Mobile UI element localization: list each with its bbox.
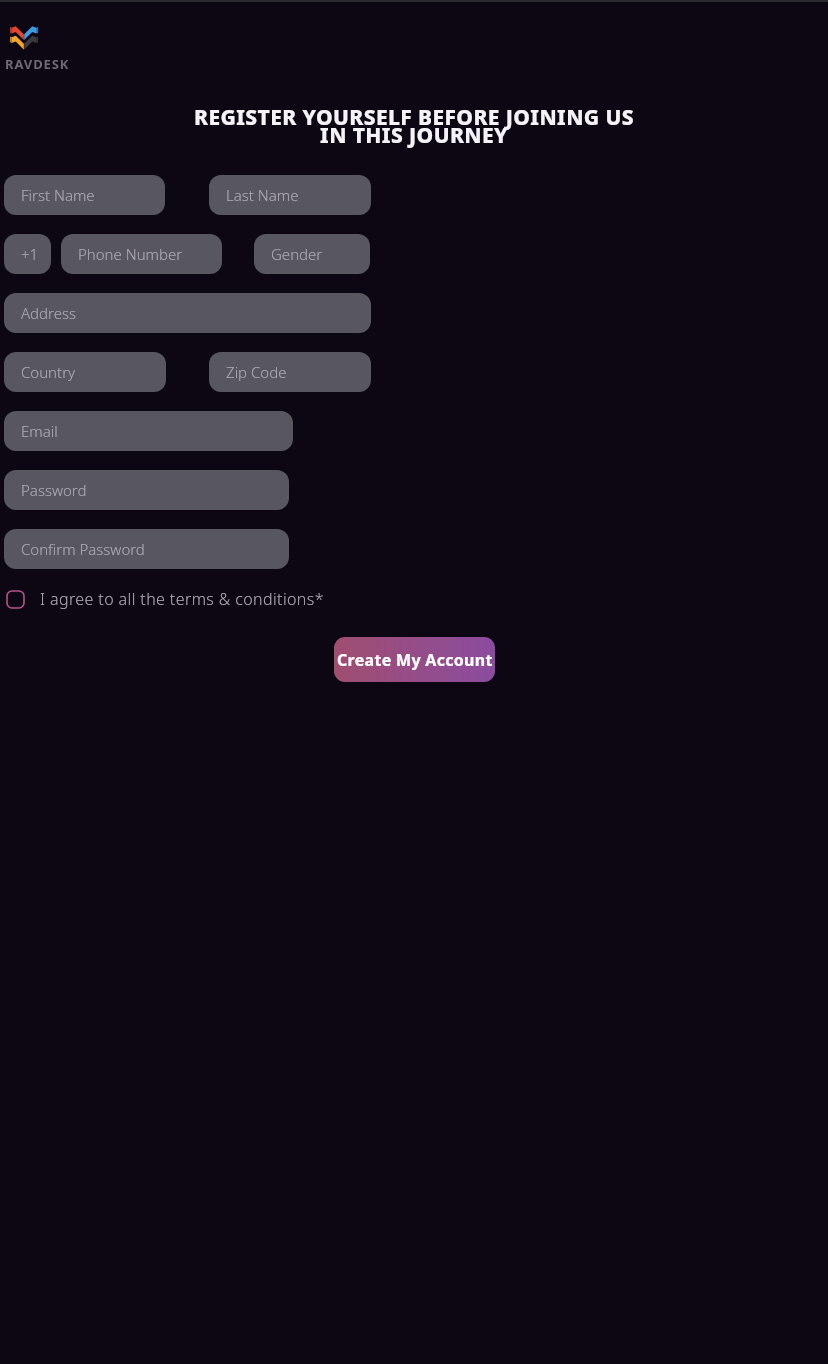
- button[interactable]: Address: [4, 293, 371, 333]
- button[interactable]: Country: [4, 352, 166, 392]
- staticText: Create My Account: [337, 649, 493, 671]
- staticText: RAVDESK: [5, 55, 70, 73]
- staticText: +1: [21, 244, 39, 264]
- staticText: Address: [21, 303, 77, 323]
- button[interactable]: Phone Number: [61, 234, 222, 274]
- button[interactable]: First Name: [4, 175, 165, 215]
- button[interactable]: +1: [4, 234, 51, 274]
- staticText: I agree to all the terms & conditions*: [40, 588, 324, 610]
- staticText: Confirm Password: [21, 539, 145, 559]
- button[interactable]: Gender: [254, 234, 370, 274]
- staticText: Phone Number: [78, 244, 183, 264]
- staticText: Zip Code: [226, 362, 287, 382]
- button[interactable]: Confirm Password: [4, 529, 289, 569]
- button[interactable]: I agree to all the terms & conditions*: [0, 588, 828, 610]
- staticText: Last Name: [226, 185, 299, 205]
- button[interactable]: Create My Account: [334, 637, 495, 682]
- staticText: First Name: [21, 185, 95, 205]
- staticText: Email: [21, 421, 58, 441]
- button[interactable]: Email: [4, 411, 293, 451]
- button[interactable]: Last Name: [209, 175, 371, 215]
- button[interactable]: Zip Code: [209, 352, 371, 392]
- staticText: Password: [21, 480, 87, 500]
- staticText: Gender: [271, 244, 323, 264]
- staticText: Country: [21, 362, 76, 382]
- button[interactable]: Password: [4, 470, 289, 510]
- staticText: REGISTER YOURSELF BEFORE JOINING US IN T…: [30, 103, 798, 149]
